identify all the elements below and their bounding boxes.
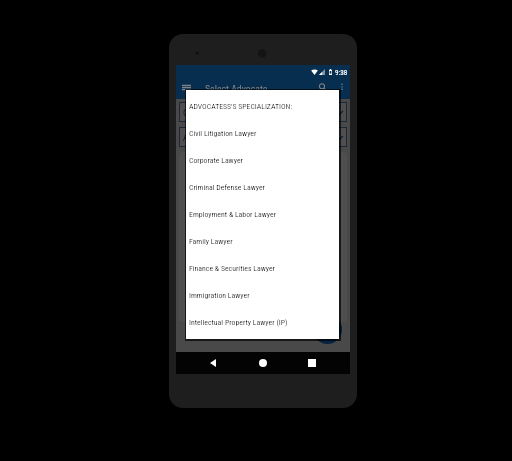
button[interactable]: Advocate Type [179,127,347,147]
button[interactable]: Employment & Labor Lawyer [186,201,339,228]
button[interactable]: Back [201,352,225,374]
staticText: Intellectual Property Lawyer (IP) [189,318,288,327]
button[interactable]: Intellectual Property Lawyer (IP) [186,309,339,336]
button[interactable]: Corporate Lawyer [186,147,339,174]
staticText: 9:38 [335,68,348,76]
button[interactable]: More options [333,78,351,96]
button[interactable]: Civil Litigation Lawyer [186,120,339,147]
staticText: Finance & Securities Lawyer [189,264,275,273]
staticText: Advocate Type [183,132,238,143]
button[interactable]: Recent apps [300,352,324,374]
staticText: Employment & Labor Lawyer [189,210,277,219]
button[interactable]: Gender [179,102,347,122]
staticText: Family Lawyer [189,237,233,246]
button[interactable]: Search [312,78,332,98]
staticText: Select Advocate [205,83,268,94]
button[interactable]: Criminal Defense Lawyer [186,174,339,201]
button[interactable]: Finance & Securities Lawyer [186,255,339,282]
button[interactable]: Immigration Lawyer [186,282,339,309]
button[interactable]: Home [251,352,275,374]
button[interactable]: Family Lawyer [186,228,339,255]
staticText: Civil Litigation Lawyer [189,129,257,138]
button[interactable]: Open navigation drawer [177,79,196,98]
staticText: Gender [183,107,212,118]
staticText: Criminal Defense Lawyer [189,183,265,192]
staticText: ADVOCATESS'S SPECIALIZATION: [189,102,293,111]
staticText: Immigration Lawyer [189,291,250,300]
staticText: Corporate Lawyer [189,156,243,165]
button[interactable]: Add [313,315,342,344]
